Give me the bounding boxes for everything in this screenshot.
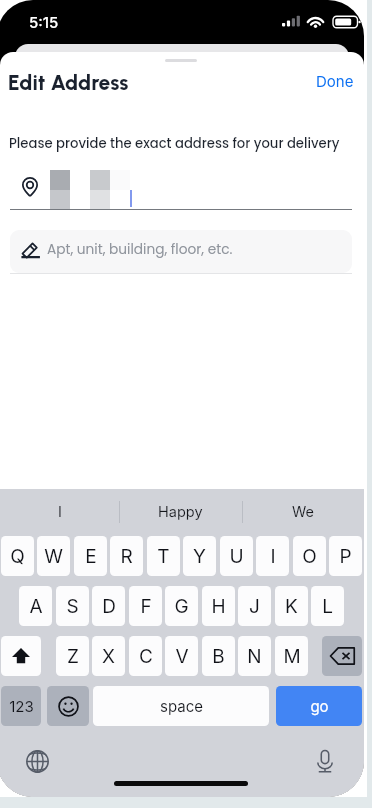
staticText: V bbox=[175, 645, 189, 668]
staticText: T bbox=[157, 545, 170, 568]
staticText: 123 bbox=[9, 697, 34, 715]
staticText: X bbox=[102, 645, 115, 668]
staticText: 5:15 bbox=[29, 13, 59, 31]
staticText: I bbox=[270, 545, 276, 568]
staticText: Z bbox=[67, 645, 79, 668]
staticText: I bbox=[58, 503, 62, 521]
button[interactable]: H bbox=[202, 586, 235, 626]
button[interactable]: Q bbox=[1, 536, 34, 576]
staticText: Apt, unit, building, floor, etc. bbox=[47, 240, 233, 259]
staticText: E bbox=[85, 545, 97, 568]
button[interactable]: Change keyboard language bbox=[20, 744, 54, 778]
button[interactable]: E bbox=[74, 536, 107, 576]
button[interactable]: 123 bbox=[1, 686, 41, 726]
button[interactable]: Emoji bbox=[47, 686, 89, 726]
button[interactable]: B bbox=[202, 636, 235, 676]
staticText: R bbox=[120, 545, 133, 568]
button[interactable]: X bbox=[92, 636, 125, 676]
staticText: S bbox=[66, 595, 79, 618]
button[interactable]: We bbox=[242, 492, 364, 531]
button[interactable]: S bbox=[56, 586, 89, 626]
staticText: go bbox=[310, 697, 329, 715]
staticText: D bbox=[102, 595, 116, 618]
button[interactable] bbox=[0, 164, 364, 210]
staticText: B bbox=[212, 645, 225, 668]
button[interactable]: Backspace bbox=[322, 636, 362, 676]
button[interactable]: J bbox=[238, 586, 271, 626]
staticText: M bbox=[283, 645, 301, 668]
staticText: Edit Address bbox=[8, 70, 129, 95]
button[interactable]: O bbox=[293, 536, 326, 576]
staticText: C bbox=[139, 645, 153, 668]
staticText: W bbox=[44, 545, 63, 568]
button[interactable]: L bbox=[311, 586, 344, 626]
button[interactable]: U bbox=[220, 536, 253, 576]
button[interactable]: P bbox=[329, 536, 362, 576]
button[interactable]: Apt, unit, building, floor, etc. bbox=[10, 230, 352, 273]
button[interactable]: M bbox=[275, 636, 308, 676]
button[interactable]: G bbox=[165, 586, 198, 626]
staticText: A bbox=[29, 595, 43, 618]
staticText: U bbox=[229, 545, 244, 568]
button[interactable]: D bbox=[92, 586, 125, 626]
staticText: K bbox=[285, 595, 298, 618]
button[interactable]: Y bbox=[183, 536, 216, 576]
staticText: Y bbox=[193, 545, 206, 568]
staticText: J bbox=[249, 595, 260, 618]
button[interactable]: A bbox=[19, 586, 52, 626]
staticText: Done bbox=[316, 72, 354, 90]
staticText: H bbox=[211, 595, 226, 618]
staticText: L bbox=[322, 595, 333, 618]
staticText: O bbox=[302, 545, 317, 568]
button[interactable]: go bbox=[276, 686, 362, 726]
staticText: Happy bbox=[158, 503, 203, 521]
button[interactable]: Happy bbox=[119, 492, 242, 531]
button[interactable]: V bbox=[165, 636, 198, 676]
button[interactable]: C bbox=[129, 636, 162, 676]
button[interactable]: space bbox=[93, 686, 269, 726]
button[interactable]: N bbox=[238, 636, 271, 676]
button[interactable]: Voice input bbox=[308, 744, 342, 778]
button[interactable]: T bbox=[147, 536, 180, 576]
staticText: F bbox=[140, 595, 152, 618]
button[interactable]: I bbox=[256, 536, 289, 576]
staticText: G bbox=[174, 595, 189, 618]
staticText: P bbox=[339, 545, 352, 568]
button[interactable]: Z bbox=[56, 636, 89, 676]
staticText: N bbox=[247, 645, 262, 668]
button[interactable]: W bbox=[37, 536, 70, 576]
button[interactable]: I bbox=[0, 492, 119, 531]
button[interactable]: Shift bbox=[1, 636, 41, 676]
button[interactable]: R bbox=[110, 536, 143, 576]
staticText: space bbox=[160, 697, 203, 715]
staticText: Please provide the exact address for you… bbox=[9, 134, 340, 152]
staticText: Q bbox=[10, 545, 25, 568]
staticText: We bbox=[292, 503, 315, 521]
button[interactable]: F bbox=[129, 586, 162, 626]
button[interactable]: K bbox=[275, 586, 308, 626]
button[interactable]: Done bbox=[307, 66, 363, 96]
